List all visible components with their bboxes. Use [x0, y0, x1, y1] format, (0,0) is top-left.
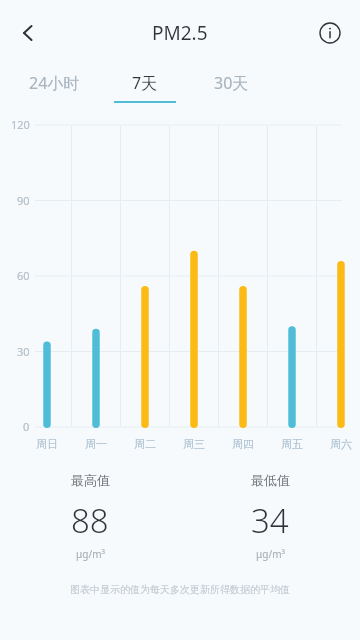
staticText: 周日: [36, 437, 58, 451]
button[interactable]: Back: [6, 11, 50, 55]
staticText: 90: [17, 193, 30, 208]
staticText: 周五: [281, 437, 303, 451]
staticText: 7天: [132, 72, 158, 94]
staticText: 周一: [85, 437, 107, 451]
staticText: 周三: [183, 437, 205, 451]
button[interactable]: 7天: [114, 66, 176, 103]
staticText: 30: [17, 344, 30, 359]
staticText: 30天: [214, 72, 249, 94]
staticText: PM2.5: [152, 20, 208, 46]
staticText: μg/m³: [256, 547, 285, 561]
staticText: 88: [71, 498, 109, 543]
staticText: 最高值: [71, 472, 110, 488]
staticText: 120: [11, 117, 30, 132]
staticText: 34: [251, 498, 289, 543]
staticText: 最低值: [251, 472, 290, 488]
staticText: 60: [17, 268, 30, 283]
button[interactable]: Info: [308, 11, 352, 55]
button[interactable]: 30天: [200, 66, 262, 101]
button[interactable]: 24小时: [18, 66, 90, 101]
staticText: μg/m³: [76, 547, 105, 561]
staticText: 周二: [134, 437, 156, 451]
staticText: 24小时: [29, 72, 80, 94]
staticText: 周四: [232, 437, 254, 451]
staticText: 图表中显示的值为每天多次更新所得数据的平均值: [0, 583, 360, 596]
staticText: 周六: [330, 437, 352, 451]
staticText: 0: [23, 419, 30, 434]
